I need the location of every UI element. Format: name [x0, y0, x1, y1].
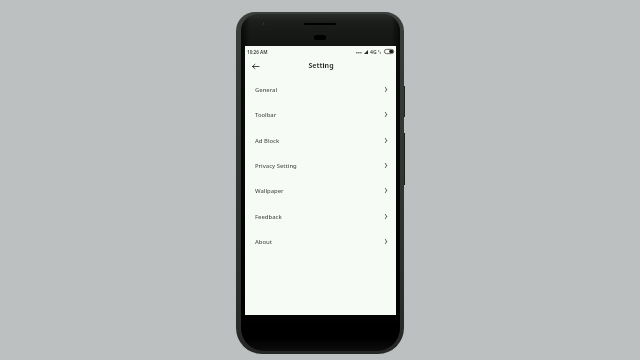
staticText: Ad Block [255, 137, 280, 145]
staticText: Privacy Setting [255, 162, 297, 170]
staticText: 10:26 AM [247, 49, 268, 55]
staticText: Toolbar [255, 111, 277, 119]
staticText: Wallpaper [255, 187, 284, 195]
staticText: Feedback [255, 213, 282, 221]
staticText: About [255, 238, 273, 246]
button[interactable]: Ad Block [245, 128, 396, 153]
button[interactable]: Wallpaper [245, 178, 396, 203]
button[interactable]: Privacy Setting [245, 153, 396, 178]
button[interactable]: Feedback [245, 204, 396, 229]
staticText: 4G [370, 48, 377, 55]
button[interactable]: Back [249, 59, 261, 73]
staticText: Setting [308, 61, 334, 71]
button[interactable]: General [245, 77, 396, 102]
staticText: General [255, 86, 278, 94]
button[interactable]: Toolbar [245, 102, 396, 127]
button[interactable]: About [245, 229, 396, 254]
